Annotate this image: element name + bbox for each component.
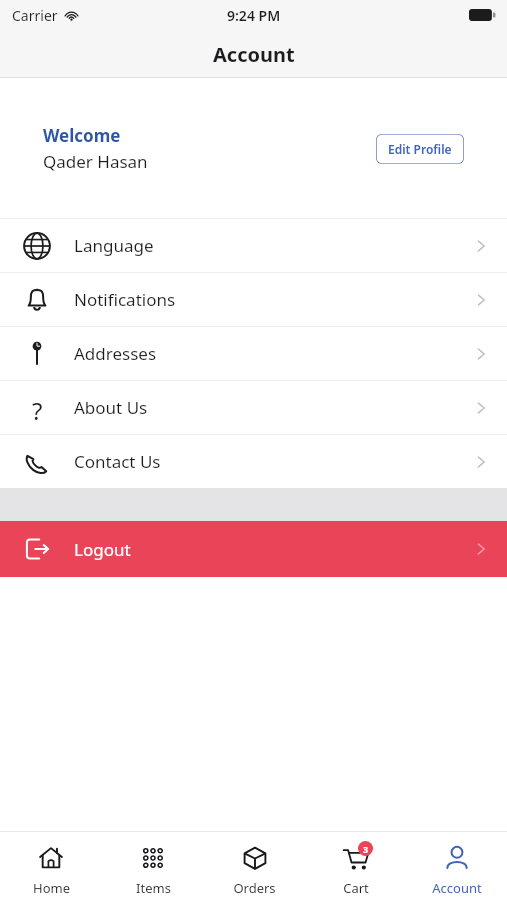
staticText: Qader Hasan: [43, 150, 148, 173]
staticText: Addresses: [74, 342, 157, 365]
staticText: Edit Profile: [388, 141, 452, 157]
staticText: About Us: [74, 396, 148, 419]
button[interactable]: Welcome: [20, 108, 487, 189]
button[interactable]: Edit Profile: [376, 134, 464, 164]
staticText: Orders: [233, 879, 276, 897]
staticText: Language: [74, 234, 154, 257]
staticText: ?: [32, 394, 43, 422]
button[interactable]: Items: [102, 832, 204, 900]
button[interactable]: Language: [0, 219, 507, 272]
button[interactable]: Account: [406, 832, 507, 900]
staticText: 9:24 PM: [227, 6, 281, 25]
staticText: Notifications: [74, 288, 176, 311]
button[interactable]: Addresses: [0, 327, 507, 380]
button[interactable]: Contact Us: [0, 435, 507, 488]
staticText: Carrier: [12, 6, 58, 25]
button[interactable]: Logout: [0, 521, 507, 577]
staticText: Account: [213, 41, 295, 68]
staticText: Logout: [74, 538, 131, 561]
staticText: 3: [363, 843, 369, 855]
staticText: Account: [432, 879, 482, 897]
staticText: Contact Us: [74, 450, 161, 473]
staticText: Welcome: [43, 124, 121, 147]
button[interactable]: Notifications: [0, 273, 507, 326]
button[interactable]: ?: [0, 381, 507, 434]
staticText: Items: [136, 879, 171, 897]
staticText: Cart: [343, 879, 369, 897]
button[interactable]: Home: [0, 832, 102, 900]
button[interactable]: Orders: [204, 832, 305, 900]
button[interactable]: 3: [305, 832, 406, 900]
staticText: Home: [33, 879, 70, 897]
